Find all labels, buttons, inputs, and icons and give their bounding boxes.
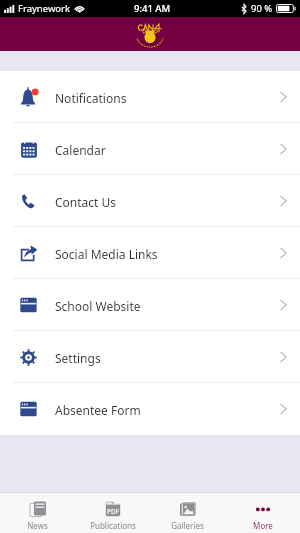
button[interactable]: Galleries	[150, 495, 225, 531]
staticText: News	[27, 520, 48, 531]
button[interactable]: School Website	[0, 279, 300, 330]
staticText: Fraynework	[18, 2, 71, 15]
button[interactable]: Calendar	[0, 123, 300, 174]
button[interactable]: Absentee Form	[0, 383, 300, 435]
staticText: Galleries	[171, 520, 204, 531]
staticText: Notifications	[55, 90, 127, 106]
staticText: PDF	[107, 507, 120, 516]
button[interactable]: PDF	[75, 495, 150, 531]
staticText: School Website	[55, 298, 141, 314]
staticText: More	[253, 520, 273, 531]
staticText: Social Media Links	[55, 246, 158, 262]
staticText: 90 %	[251, 2, 273, 15]
button[interactable]: Contact Us	[0, 175, 300, 226]
button[interactable]: Notifications	[0, 71, 300, 122]
staticText: Settings	[55, 350, 101, 366]
button[interactable]: Settings	[0, 331, 300, 382]
button[interactable]: News	[0, 495, 75, 531]
staticText: Publications	[90, 520, 136, 531]
staticText: Absentee Form	[55, 402, 141, 418]
staticText: Contact Us	[55, 194, 117, 210]
button[interactable]: More	[225, 495, 300, 531]
button[interactable]: Social Media Links	[0, 227, 300, 278]
staticText: 9:41 AM	[134, 2, 171, 15]
staticText: Calendar	[55, 142, 106, 158]
